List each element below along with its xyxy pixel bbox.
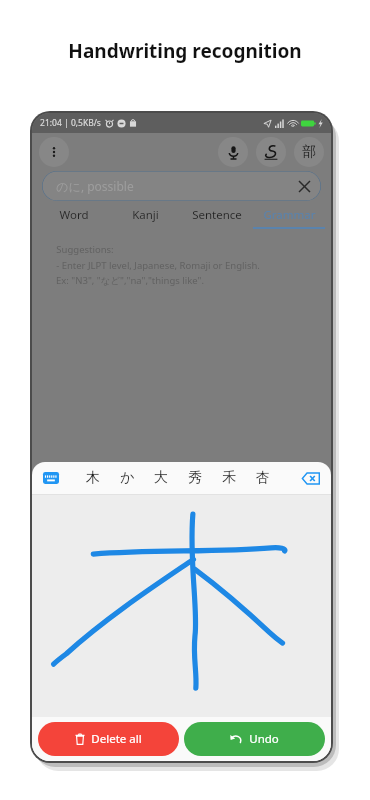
button[interactable]: 木 xyxy=(78,463,108,493)
staticText: のに, possible xyxy=(56,178,134,194)
staticText: 秀 xyxy=(188,469,202,487)
button[interactable]: Kanji xyxy=(109,201,181,229)
staticText: Suggestions: xyxy=(56,243,114,256)
staticText: Sentence xyxy=(192,207,242,223)
staticText: Grammar xyxy=(263,207,316,223)
button[interactable]: Backspace xyxy=(299,467,323,489)
staticText: Delete all xyxy=(91,731,142,747)
staticText: 部 xyxy=(302,143,316,161)
staticText: 木 xyxy=(86,469,100,487)
staticText: 21:04 | 0,5KB/s xyxy=(40,117,101,129)
staticText: Word xyxy=(59,207,89,223)
staticText: Handwriting recognition xyxy=(68,38,302,64)
button[interactable]: Grammar xyxy=(253,201,325,229)
button[interactable]: のに, possible xyxy=(42,171,321,201)
button[interactable]: Radical search xyxy=(294,137,324,167)
button[interactable]: Sentence xyxy=(181,201,253,229)
button[interactable]: Voice search xyxy=(218,137,248,167)
staticText: Undo xyxy=(249,731,279,747)
button[interactable]: Clear search xyxy=(293,175,315,197)
button[interactable] xyxy=(32,495,331,717)
button[interactable]: Word xyxy=(38,201,109,229)
staticText: - Enter JLPT level, Japanese, Romaji or … xyxy=(56,259,260,272)
button[interactable]: 大 xyxy=(146,463,176,493)
staticText: 大 xyxy=(154,469,168,487)
staticText: Kanji xyxy=(132,207,159,223)
staticText: か xyxy=(120,469,135,487)
staticText: 杏 xyxy=(256,469,270,487)
button[interactable]: Switch to keyboard xyxy=(40,467,62,489)
button[interactable]: More options xyxy=(39,137,69,167)
button[interactable]: 禾 xyxy=(214,463,244,493)
button[interactable]: 杏 xyxy=(248,463,278,493)
staticText: Ex: "N3", "など","na","things like". xyxy=(56,274,204,287)
button[interactable]: Handwriting input xyxy=(256,137,286,167)
button[interactable]: Undo xyxy=(184,722,325,756)
button[interactable]: 秀 xyxy=(180,463,210,493)
button[interactable]: Delete all xyxy=(38,722,179,756)
button[interactable]: か xyxy=(112,463,142,493)
staticText: 禾 xyxy=(222,469,236,487)
